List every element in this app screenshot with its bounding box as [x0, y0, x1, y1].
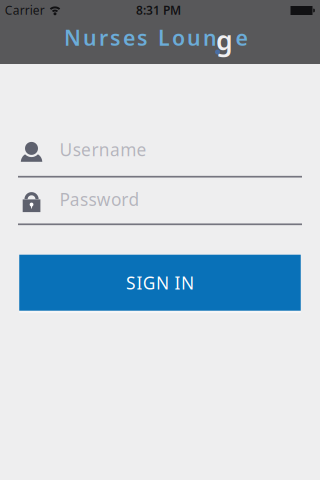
staticText: Carrier	[5, 2, 45, 18]
button[interactable]: Username	[16, 131, 304, 178]
button[interactable]: Password	[16, 181, 304, 228]
staticText: SIGN IN	[126, 271, 194, 294]
staticText: g	[216, 22, 233, 58]
staticText: Password	[59, 188, 140, 211]
staticText: Nurses Loun	[64, 23, 217, 52]
staticText: e	[235, 23, 247, 52]
button[interactable]: SIGN IN	[19, 255, 301, 311]
staticText: Username	[59, 138, 147, 161]
staticText: 8:31 PM	[136, 2, 181, 18]
